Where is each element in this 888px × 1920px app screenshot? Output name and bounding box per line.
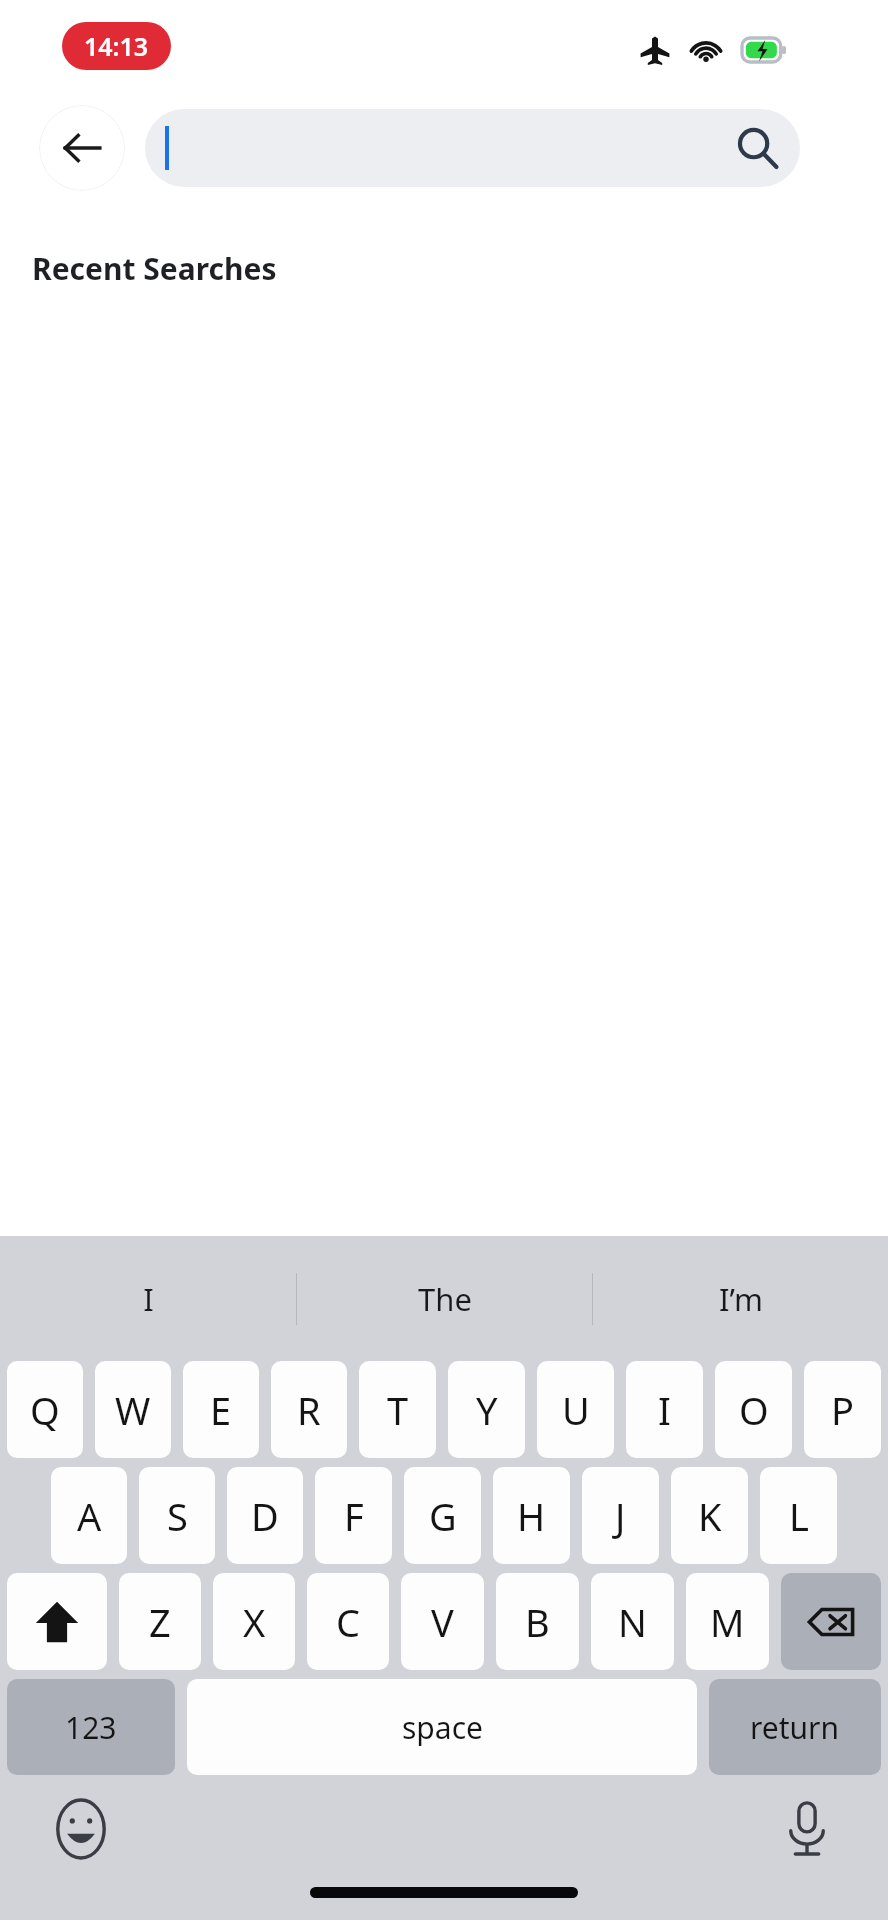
button[interactable]: P (804, 1361, 881, 1458)
button[interactable]: C (307, 1573, 389, 1670)
button[interactable]: V (401, 1573, 484, 1670)
staticText: D (251, 1490, 279, 1542)
button[interactable]: H (493, 1467, 570, 1564)
staticText: N (618, 1596, 647, 1648)
staticText: K (698, 1490, 722, 1542)
staticText: S (167, 1490, 188, 1542)
staticText: R (297, 1384, 321, 1436)
staticText: G (429, 1490, 457, 1542)
staticText: T (387, 1384, 409, 1436)
button[interactable]: N (591, 1573, 674, 1670)
button[interactable]: return (709, 1679, 881, 1775)
button[interactable]: A (51, 1467, 127, 1564)
button[interactable]: space (187, 1679, 697, 1775)
staticText: B (525, 1596, 550, 1648)
button[interactable]: W (95, 1361, 171, 1458)
button[interactable]: L (760, 1467, 837, 1564)
staticText: M (710, 1596, 745, 1648)
staticText: The (418, 1278, 472, 1320)
staticText: I (143, 1278, 154, 1320)
staticText: space (402, 1707, 483, 1748)
button[interactable]: Dictation (776, 1798, 838, 1860)
button[interactable]: Back (39, 105, 125, 191)
button[interactable]: Y (448, 1361, 525, 1458)
staticText: L (789, 1490, 809, 1542)
staticText: H (517, 1490, 546, 1542)
button[interactable] (145, 109, 800, 187)
button[interactable]: The (297, 1236, 592, 1361)
staticText: P (831, 1384, 854, 1436)
button[interactable]: B (496, 1573, 579, 1670)
button[interactable]: X (213, 1573, 295, 1670)
button[interactable]: I (626, 1361, 703, 1458)
staticText: F (344, 1490, 364, 1542)
button[interactable]: E (183, 1361, 259, 1458)
staticText: 14:13 (84, 29, 149, 63)
staticText: I’m (719, 1278, 763, 1320)
staticText: Y (476, 1384, 498, 1436)
button[interactable]: S (139, 1467, 215, 1564)
button[interactable]: 123 (7, 1679, 175, 1775)
staticText: J (615, 1490, 626, 1542)
staticText: Q (30, 1384, 60, 1436)
button[interactable]: G (404, 1467, 481, 1564)
staticText: W (115, 1384, 151, 1436)
button[interactable]: I’m (593, 1236, 888, 1361)
button[interactable]: R (271, 1361, 347, 1458)
button[interactable]: M (686, 1573, 769, 1670)
staticText: Z (149, 1596, 171, 1648)
staticText: Recent Searches (32, 248, 277, 289)
staticText: A (77, 1490, 102, 1542)
staticText: C (336, 1596, 361, 1648)
button[interactable]: Emoji (50, 1798, 112, 1860)
button[interactable]: F (315, 1467, 392, 1564)
button[interactable]: O (715, 1361, 792, 1458)
staticText: E (210, 1384, 232, 1436)
staticText: return (750, 1707, 840, 1748)
staticText: U (562, 1384, 590, 1436)
button[interactable]: Backspace (781, 1573, 881, 1670)
button[interactable]: T (359, 1361, 436, 1458)
button[interactable]: Q (7, 1361, 83, 1458)
button[interactable]: D (227, 1467, 303, 1564)
button[interactable]: J (582, 1467, 659, 1564)
staticText: 123 (65, 1707, 117, 1748)
button[interactable]: Shift (7, 1573, 107, 1670)
button[interactable]: U (537, 1361, 614, 1458)
button[interactable]: K (671, 1467, 748, 1564)
button[interactable]: I (0, 1236, 296, 1361)
staticText: O (739, 1384, 769, 1436)
staticText: V (431, 1596, 454, 1648)
staticText: I (658, 1384, 671, 1436)
staticText: X (243, 1596, 266, 1648)
button[interactable]: Z (119, 1573, 201, 1670)
